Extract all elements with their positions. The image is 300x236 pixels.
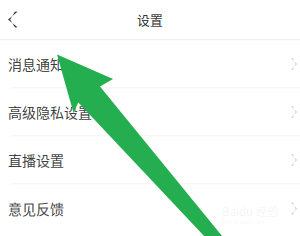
staticText: 消息通知 (8, 54, 64, 74)
staticText: 意见反馈 (8, 198, 64, 219)
staticText: 设置 (137, 10, 163, 29)
button[interactable]: Back (0, 3, 30, 36)
staticText: 高级隐私设置 (8, 102, 92, 122)
button[interactable]: 直播设置 (0, 136, 300, 184)
button[interactable]: 意见反馈 (0, 184, 300, 232)
button[interactable]: 消息通知 (0, 40, 300, 88)
staticText: Baidu 经验 (222, 203, 278, 219)
staticText: 直播设置 (8, 150, 64, 170)
button[interactable]: 高级隐私设置 (0, 88, 300, 136)
